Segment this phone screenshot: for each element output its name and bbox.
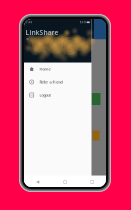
staticText: Home xyxy=(39,66,50,72)
staticText: 86% xyxy=(80,20,86,24)
staticText: LinkShare xyxy=(26,28,59,37)
button[interactable]: Home xyxy=(24,62,91,75)
staticText: Refer a friend xyxy=(39,79,62,85)
button[interactable]: Refer a friend xyxy=(24,75,91,88)
button[interactable]: Back xyxy=(33,177,42,186)
staticText: Tap xyxy=(26,37,30,40)
button[interactable]: Logout xyxy=(24,88,91,101)
button[interactable]: Home xyxy=(60,177,69,186)
staticText: 5:44 xyxy=(26,20,33,24)
button[interactable]: Recents xyxy=(88,177,97,186)
staticText: Logout xyxy=(39,92,50,98)
